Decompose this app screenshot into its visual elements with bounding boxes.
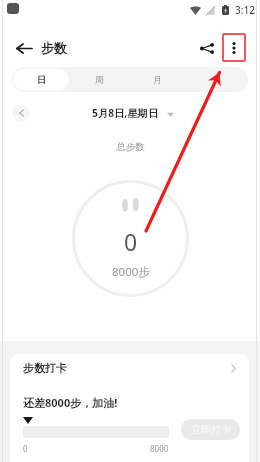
staticText: 8000步 [112,264,150,280]
button[interactable]: 周 [71,69,127,90]
button[interactable]: Share [197,37,217,59]
button[interactable]: 立即打卡 [181,419,240,440]
button[interactable]: More options [222,33,246,62]
button[interactable]: 步数打卡 [10,354,249,382]
staticText: 日 [37,74,46,85]
button[interactable]: 月 [129,69,185,90]
button[interactable]: Back [13,37,35,59]
staticText: 3:12 [235,3,255,17]
staticText: 0 [23,443,28,454]
button[interactable]: Previous day [12,104,30,122]
staticText: 还差8000步，加油! [23,395,118,410]
staticText: 5月8日,星期日 [92,106,159,120]
staticText: 8000 [150,443,169,454]
staticText: 周 [95,74,104,85]
button[interactable]: 日 [13,69,69,90]
staticText: 0 [124,226,138,257]
staticText: 月 [153,74,162,85]
staticText: 步数 [41,40,67,56]
staticText: 总步数 [116,141,145,153]
staticText: 步数打卡 [23,361,67,375]
staticText: 立即打卡 [191,423,231,436]
